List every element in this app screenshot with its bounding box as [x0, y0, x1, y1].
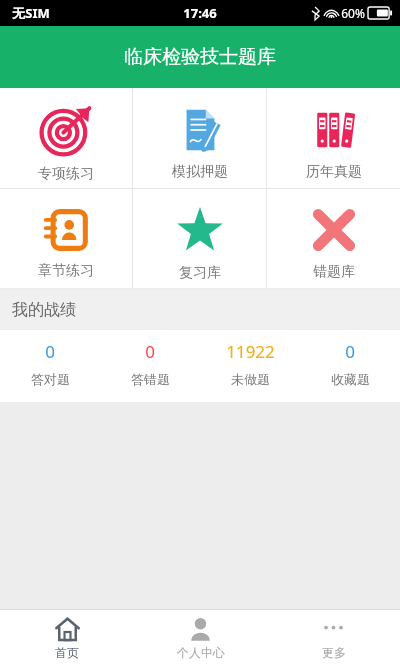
button[interactable]: 0 [0, 340, 100, 402]
button[interactable]: 错题库 [267, 189, 400, 288]
other: 更多 [321, 617, 346, 642]
other: 首页 [55, 617, 80, 642]
staticText: 专项练习 [38, 165, 94, 183]
staticText: 历年真题 [306, 163, 362, 181]
staticText: 未做题 [231, 371, 270, 387]
staticText: 11922 [226, 340, 275, 363]
button[interactable]: 个人中心 [134, 610, 267, 666]
staticText: 章节练习 [38, 262, 94, 280]
staticText: 17:46 [183, 4, 217, 22]
button[interactable]: 首页 [0, 610, 134, 666]
staticText: 复习库 [179, 264, 221, 282]
staticText: 60% [341, 5, 365, 21]
staticText: 首页 [55, 645, 79, 660]
staticText: 0 [345, 340, 355, 363]
other: 个人中心 [188, 617, 213, 642]
staticText: 答对题 [31, 371, 70, 387]
button[interactable]: 模拟押题 [133, 88, 266, 188]
staticText: 我的战绩 [12, 300, 76, 320]
button[interactable]: 章节练习 [0, 189, 132, 288]
button[interactable]: 0 [300, 340, 400, 402]
button[interactable]: 更多 [267, 610, 400, 666]
button[interactable]: 历年真题 [267, 88, 400, 188]
staticText: 答错题 [131, 371, 170, 387]
staticText: 个人中心 [177, 645, 225, 660]
staticText: 0 [45, 340, 55, 363]
staticText: 模拟押题 [172, 163, 228, 181]
button[interactable]: 0 [100, 340, 200, 402]
staticText: 收藏题 [331, 371, 370, 387]
staticText: 无SIM [12, 4, 50, 22]
staticText: 错题库 [313, 263, 355, 281]
staticText: 0 [145, 340, 155, 363]
button[interactable]: 11922 [200, 340, 300, 402]
button[interactable]: 复习库 [133, 189, 266, 288]
button[interactable]: 专项练习 [0, 88, 132, 188]
staticText: 更多 [322, 645, 346, 660]
staticText: 临床检验技士题库 [124, 45, 276, 69]
